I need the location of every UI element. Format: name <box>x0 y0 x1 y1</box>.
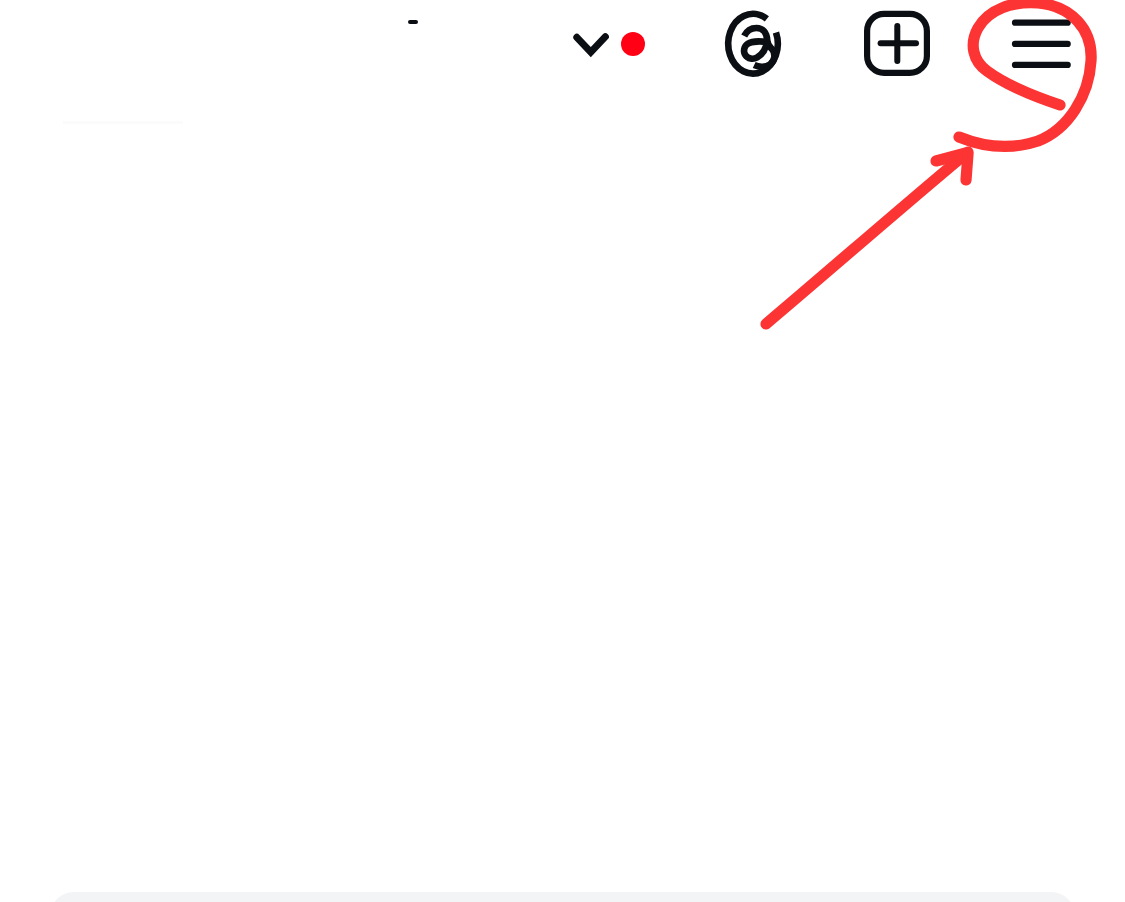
button[interactable]: New post <box>858 3 936 81</box>
button[interactable]: Switch account <box>556 4 628 84</box>
button[interactable]: Unread notifications <box>621 32 645 56</box>
button[interactable]: Threads <box>718 8 788 78</box>
button[interactable]: Menu <box>1000 2 1086 86</box>
